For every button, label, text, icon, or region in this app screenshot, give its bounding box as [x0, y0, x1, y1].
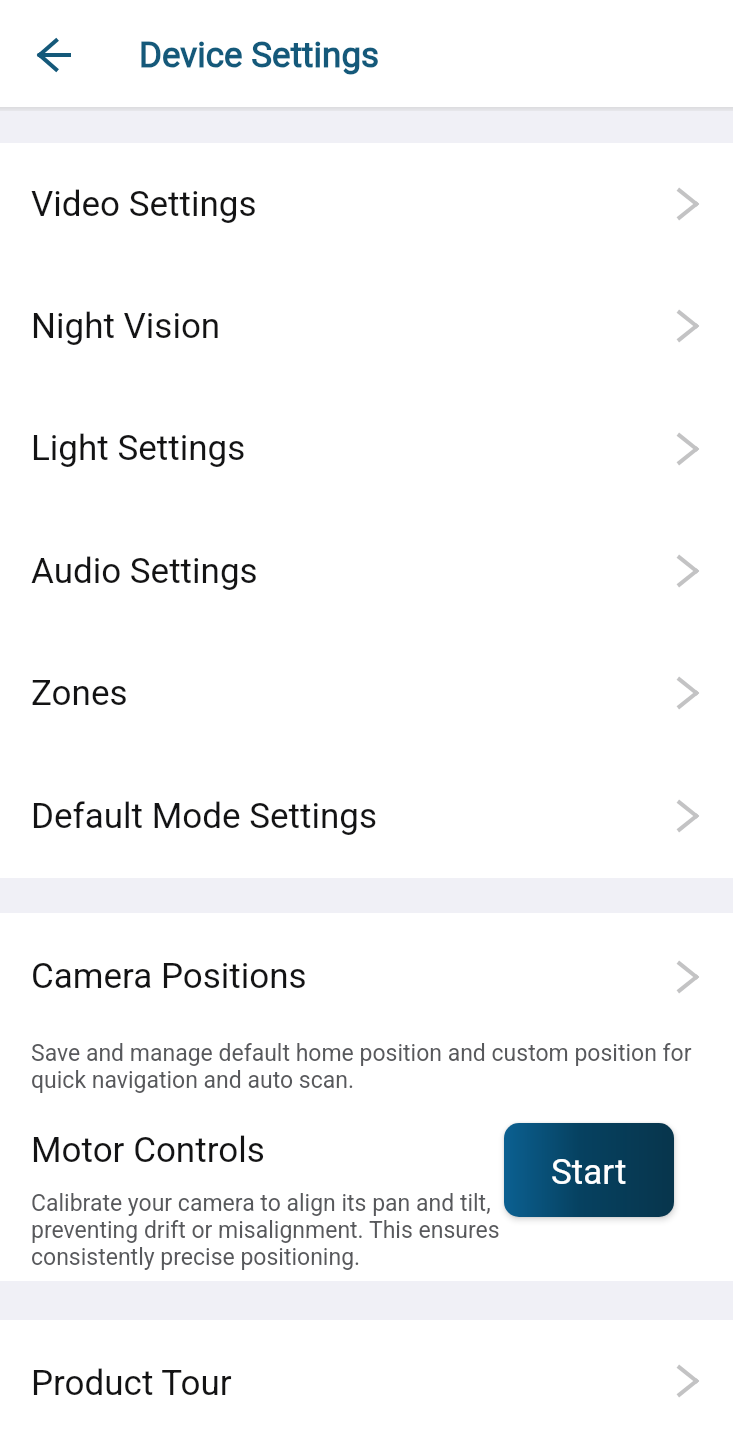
button[interactable]: Default Mode Settings	[0, 754, 733, 878]
staticText: Motor Controls	[31, 1130, 265, 1171]
button[interactable]: Back	[0, 0, 107, 107]
button[interactable]: Video Settings	[0, 143, 733, 265]
staticText: Light Settings	[31, 428, 246, 469]
button[interactable]: Camera Positions	[0, 913, 733, 1040]
button[interactable]: Light Settings	[0, 387, 733, 510]
staticText: Calibrate your camera to align its pan a…	[31, 1190, 502, 1271]
button[interactable]: Zones	[0, 632, 733, 754]
staticText: Audio Settings	[31, 551, 258, 592]
button[interactable]: Night Vision	[0, 265, 733, 387]
staticText: Default Mode Settings	[31, 796, 377, 837]
staticText: Start	[551, 1152, 627, 1193]
staticText: Device Settings	[139, 35, 380, 76]
staticText: Save and manage default home position an…	[31, 1040, 693, 1094]
button[interactable]: Start	[504, 1123, 674, 1217]
staticText: Product Tour	[31, 1363, 232, 1404]
staticText: Zones	[31, 673, 128, 714]
staticText: Night Vision	[31, 306, 221, 347]
button[interactable]: Audio Settings	[0, 510, 733, 632]
staticText: Camera Positions	[31, 956, 307, 997]
button[interactable]: Product Tour	[0, 1320, 733, 1440]
staticText: Video Settings	[31, 184, 257, 225]
